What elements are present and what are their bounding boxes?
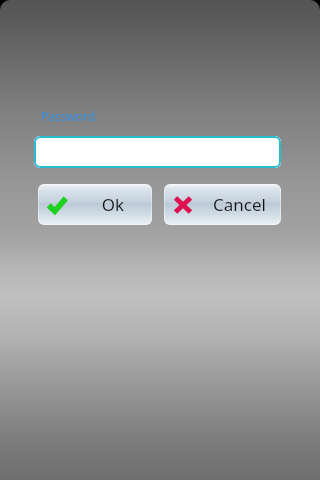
staticText: Cancel — [198, 193, 281, 216]
button[interactable]: Cancel — [164, 184, 281, 225]
staticText: Ok — [74, 193, 152, 216]
button[interactable]: Ok — [38, 184, 152, 225]
other: Ok — [46, 194, 68, 216]
staticText: Password — [41, 108, 96, 124]
other: Cancel — [172, 194, 194, 216]
button[interactable] — [34, 136, 281, 168]
